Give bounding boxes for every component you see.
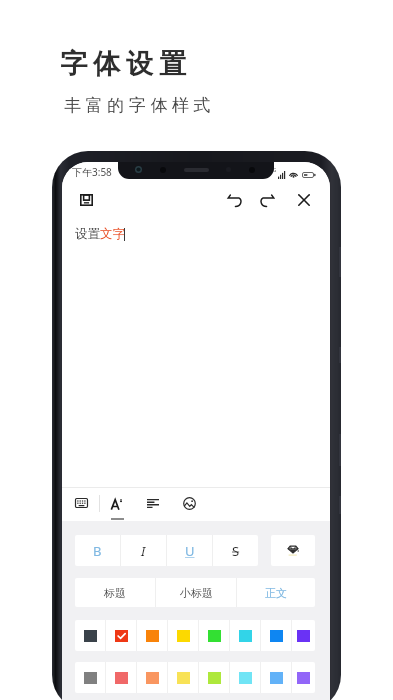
button[interactable]: Colour 8 bbox=[292, 620, 315, 651]
button[interactable]: Italic bbox=[121, 535, 166, 566]
button[interactable]: Colour 5 bbox=[199, 620, 229, 651]
button[interactable]: Undo bbox=[222, 188, 246, 212]
staticText: 小标题 bbox=[180, 586, 213, 600]
button[interactable]: Colour 4 bbox=[168, 662, 198, 693]
button[interactable]: Colour 1 bbox=[75, 662, 105, 693]
button[interactable]: Underline bbox=[167, 535, 212, 566]
button[interactable]: Colour 8 bbox=[292, 662, 315, 693]
staticText: B bbox=[93, 542, 102, 560]
staticText: 下午3:58 bbox=[72, 165, 112, 179]
button[interactable]: Keyboard bbox=[71, 493, 91, 513]
button[interactable]: Text highlight bbox=[271, 535, 315, 566]
button[interactable]: Colour 4 bbox=[168, 620, 198, 651]
button[interactable]: Colour 7 bbox=[261, 662, 291, 693]
button[interactable]: Bold bbox=[75, 535, 120, 566]
button[interactable]: Close bbox=[292, 188, 316, 212]
button[interactable]: Save bbox=[74, 188, 98, 212]
staticText: U bbox=[185, 542, 195, 560]
button[interactable]: 标题 bbox=[75, 578, 155, 607]
button[interactable]: 小标题 bbox=[156, 578, 236, 607]
staticText: S bbox=[232, 542, 240, 560]
button[interactable]: Colour 3 bbox=[137, 620, 167, 651]
button[interactable]: Paragraph alignment bbox=[143, 493, 163, 513]
staticText: 丰富的字体样式 bbox=[64, 95, 216, 116]
button[interactable]: Colour 6 bbox=[230, 662, 260, 693]
button[interactable]: Colour 3 bbox=[137, 662, 167, 693]
button[interactable]: 正文 bbox=[237, 578, 315, 607]
button[interactable]: Colour 2 bbox=[106, 620, 136, 651]
staticText: 正文 bbox=[265, 586, 287, 600]
button[interactable]: Strikethrough bbox=[213, 535, 258, 566]
button[interactable]: Colour 6 bbox=[230, 620, 260, 651]
button[interactable]: Font style bbox=[105, 493, 125, 513]
button[interactable]: Colour 1 bbox=[75, 620, 105, 651]
staticText: 标题 bbox=[104, 586, 126, 600]
staticText: 设置文字 bbox=[75, 226, 125, 242]
staticText: 字体设置 bbox=[57, 47, 189, 81]
button[interactable]: Colour 5 bbox=[199, 662, 229, 693]
button[interactable]: Colour 7 bbox=[261, 620, 291, 651]
staticText: 4G bbox=[270, 167, 277, 174]
button[interactable]: Colour 2 bbox=[106, 662, 136, 693]
button[interactable]: Insert image bbox=[179, 493, 199, 513]
button[interactable]: Redo bbox=[256, 188, 280, 212]
staticText: I bbox=[141, 542, 146, 560]
